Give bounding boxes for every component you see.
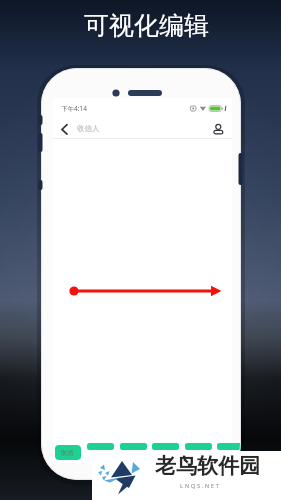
button[interactable]	[87, 443, 114, 450]
staticText: 下午4:14	[61, 104, 87, 113]
button[interactable]: 老鸟软件园	[92, 451, 281, 500]
button[interactable]	[185, 443, 212, 450]
button[interactable]	[213, 123, 226, 136]
button[interactable]	[217, 443, 241, 450]
button[interactable]: 取消	[55, 445, 81, 460]
button[interactable]	[152, 443, 179, 450]
staticText: 收信人	[77, 124, 100, 133]
staticText: 可视化编辑	[84, 10, 209, 41]
staticText: 取消	[61, 449, 73, 457]
button[interactable]	[55, 117, 73, 135]
staticText: 老鸟软件园	[155, 453, 260, 479]
staticText: LNQS.NET	[180, 482, 221, 490]
button[interactable]	[120, 443, 147, 450]
